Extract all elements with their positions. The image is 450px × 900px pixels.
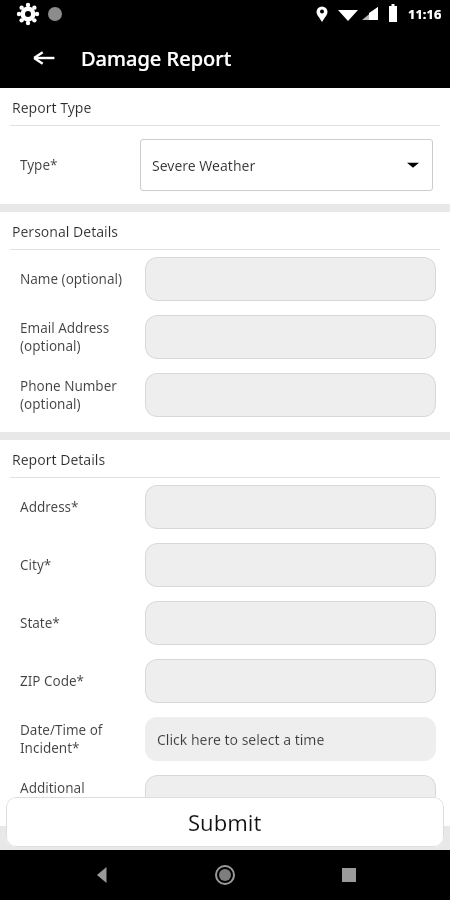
- staticText: Severe Weather: [152, 156, 256, 175]
- staticText: Address*: [20, 498, 79, 516]
- button[interactable]: Recent apps: [327, 853, 371, 897]
- button[interactable]: Additional Information: [0, 768, 450, 826]
- staticText: Damage Report: [81, 45, 232, 72]
- button[interactable]: Home: [203, 853, 247, 897]
- button[interactable]: Name (optional): [0, 250, 450, 308]
- staticText: Date/Time of Incident*: [20, 721, 103, 757]
- button[interactable]: City*: [0, 536, 450, 594]
- staticText: 11:16: [408, 5, 442, 23]
- staticText: Name (optional): [20, 270, 123, 288]
- button[interactable]: Type*: [0, 126, 450, 204]
- button[interactable]: Email Address (optional): [0, 308, 450, 366]
- staticText: Submit: [188, 807, 262, 837]
- button[interactable]: Address*: [0, 478, 450, 536]
- staticText: City*: [20, 556, 52, 574]
- staticText: Email Address (optional): [20, 319, 110, 355]
- staticText: Personal Details: [12, 222, 119, 241]
- button[interactable]: ZIP Code*: [0, 652, 450, 710]
- button[interactable]: Phone Number (optional): [0, 366, 450, 424]
- button[interactable]: Back: [81, 853, 125, 897]
- staticText: State*: [20, 614, 60, 632]
- button[interactable]: Date/Time of Incident*: [0, 710, 450, 768]
- staticText: Additional Information: [20, 779, 97, 815]
- staticText: ZIP Code*: [20, 672, 85, 690]
- button[interactable]: Back: [22, 36, 66, 80]
- staticText: Report Type: [12, 98, 92, 117]
- staticText: Report Details: [12, 450, 106, 469]
- staticText: Phone Number (optional): [20, 377, 117, 413]
- button[interactable]: Submit: [6, 797, 444, 847]
- button[interactable]: State*: [0, 594, 450, 652]
- staticText: Type*: [20, 156, 58, 174]
- staticText: Click here to select a time: [157, 730, 325, 749]
